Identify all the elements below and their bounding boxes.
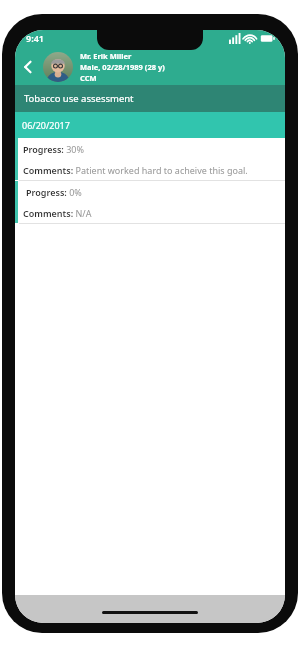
staticText: CCM (80, 73, 97, 83)
staticText: 06/20/2017 (22, 119, 70, 131)
button[interactable]: Tobacco use assessment (15, 85, 285, 112)
button[interactable]: Comments: N/A (18, 202, 285, 223)
staticText: 9:41 (26, 32, 44, 44)
staticText: Comments: Patient worked hard to acheive… (23, 164, 248, 176)
button[interactable]: 06/20/2017 (15, 112, 285, 138)
button[interactable]: Patient photo (43, 52, 73, 82)
button[interactable]: Progress: 30% (18, 138, 285, 159)
staticText: Tobacco use assessment (24, 92, 134, 105)
button[interactable]: Comments: Patient worked hard to acheive… (18, 159, 285, 180)
button[interactable]: Progress: 0% (18, 181, 285, 202)
staticText: Mr. Erik Miller (80, 51, 132, 61)
staticText: Male, 02/28/1989 (28 y) (80, 62, 165, 72)
staticText: Progress: 30% (23, 143, 84, 155)
staticText: Progress: 0% (26, 186, 82, 198)
staticText: Comments: N/A (23, 207, 92, 219)
button[interactable]: Back (15, 54, 41, 80)
